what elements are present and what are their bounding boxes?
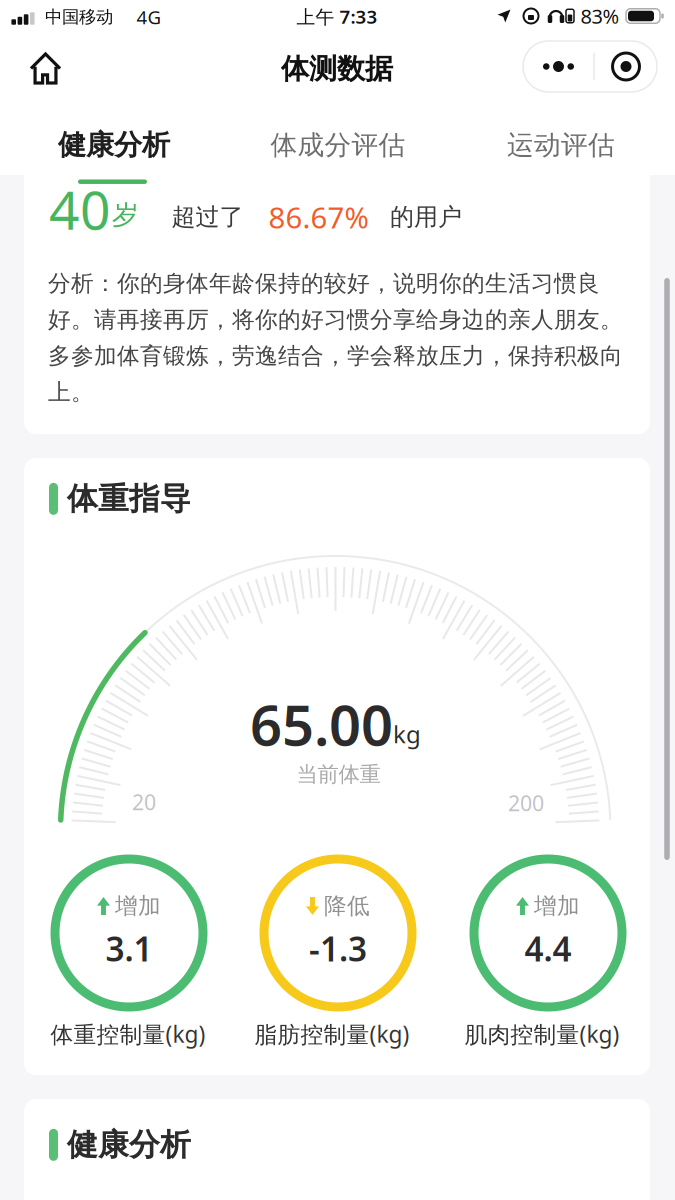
staticText: 中国移动: [45, 6, 113, 28]
button[interactable]: Home: [23, 46, 68, 91]
staticText: 40: [49, 174, 111, 244]
button[interactable]: 健康分析: [24, 110, 204, 180]
staticText: 20: [132, 788, 156, 816]
staticText: 好。请再接再厉，将你的好习惯分享给身边的亲人朋友。: [48, 306, 623, 333]
staticText: 超过了: [171, 202, 243, 232]
staticText: 4G: [136, 5, 161, 29]
staticText: kg: [393, 718, 421, 750]
staticText: 肌肉控制量(kg): [464, 1019, 619, 1049]
staticText: 多参加体育锻炼，劳逸结合，学会释放压力，保持积极向: [48, 342, 623, 370]
staticText: 健康分析: [58, 128, 170, 162]
staticText: 运动评估: [507, 129, 615, 161]
staticText: 的用户: [390, 202, 462, 232]
staticText: 健康分析: [67, 1126, 191, 1164]
staticText: 4.4: [524, 926, 571, 971]
staticText: 体成分评估: [270, 129, 405, 161]
staticText: 脂肪控制量(kg): [254, 1019, 409, 1049]
staticText: 增加: [534, 892, 580, 920]
staticText: 上。: [48, 378, 94, 406]
staticText: 增加: [115, 892, 161, 920]
staticText: 200: [508, 789, 544, 817]
staticText: 体重控制量(kg): [50, 1019, 205, 1049]
button[interactable]: Close: [594, 41, 657, 92]
staticText: 体重指导: [67, 480, 191, 518]
staticText: 当前体重: [296, 761, 380, 788]
staticText: 86.67%: [268, 197, 368, 236]
staticText: 上午 7:33: [296, 4, 377, 29]
staticText: -1.3: [309, 926, 367, 971]
staticText: 体测数据: [281, 52, 393, 86]
staticText: 岁: [112, 199, 139, 231]
staticText: 65.00: [250, 687, 393, 761]
staticText: 降低: [324, 892, 370, 920]
button[interactable]: 体成分评估: [238, 110, 438, 180]
button[interactable]: More: [525, 41, 592, 92]
staticText: 分析：你的身体年龄保持的较好，说明你的生活习惯良: [48, 269, 600, 297]
button[interactable]: 运动评估: [471, 110, 651, 180]
staticText: 3.1: [105, 926, 152, 971]
staticText: 83%: [580, 3, 619, 29]
